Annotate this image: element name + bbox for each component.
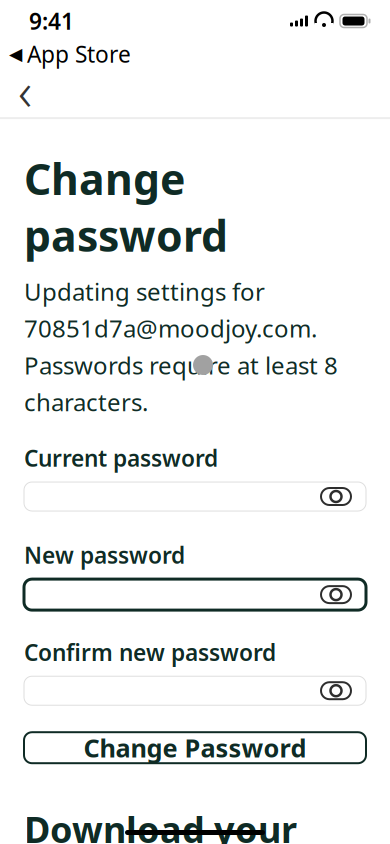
staticText: Change Password xyxy=(83,731,306,764)
button[interactable] xyxy=(24,579,366,610)
staticText: ◀ xyxy=(9,44,22,64)
staticText: 9:41 xyxy=(29,6,74,36)
staticText: App Store xyxy=(27,39,131,69)
staticText: New password xyxy=(24,540,185,570)
button[interactable] xyxy=(24,676,366,705)
staticText: Updating settings for 70851d7a@moodjoy.c… xyxy=(24,275,338,418)
staticText: Change password xyxy=(24,150,228,263)
staticText: ‹ xyxy=(18,55,32,125)
staticText: Download your information xyxy=(24,805,297,844)
staticText: Current password xyxy=(24,443,218,473)
button[interactable]: Change Password xyxy=(24,732,366,763)
button[interactable]: ◀ xyxy=(0,34,390,69)
button[interactable] xyxy=(24,482,366,511)
button[interactable]: Back xyxy=(0,69,390,117)
staticText: Confirm new password xyxy=(24,637,276,667)
